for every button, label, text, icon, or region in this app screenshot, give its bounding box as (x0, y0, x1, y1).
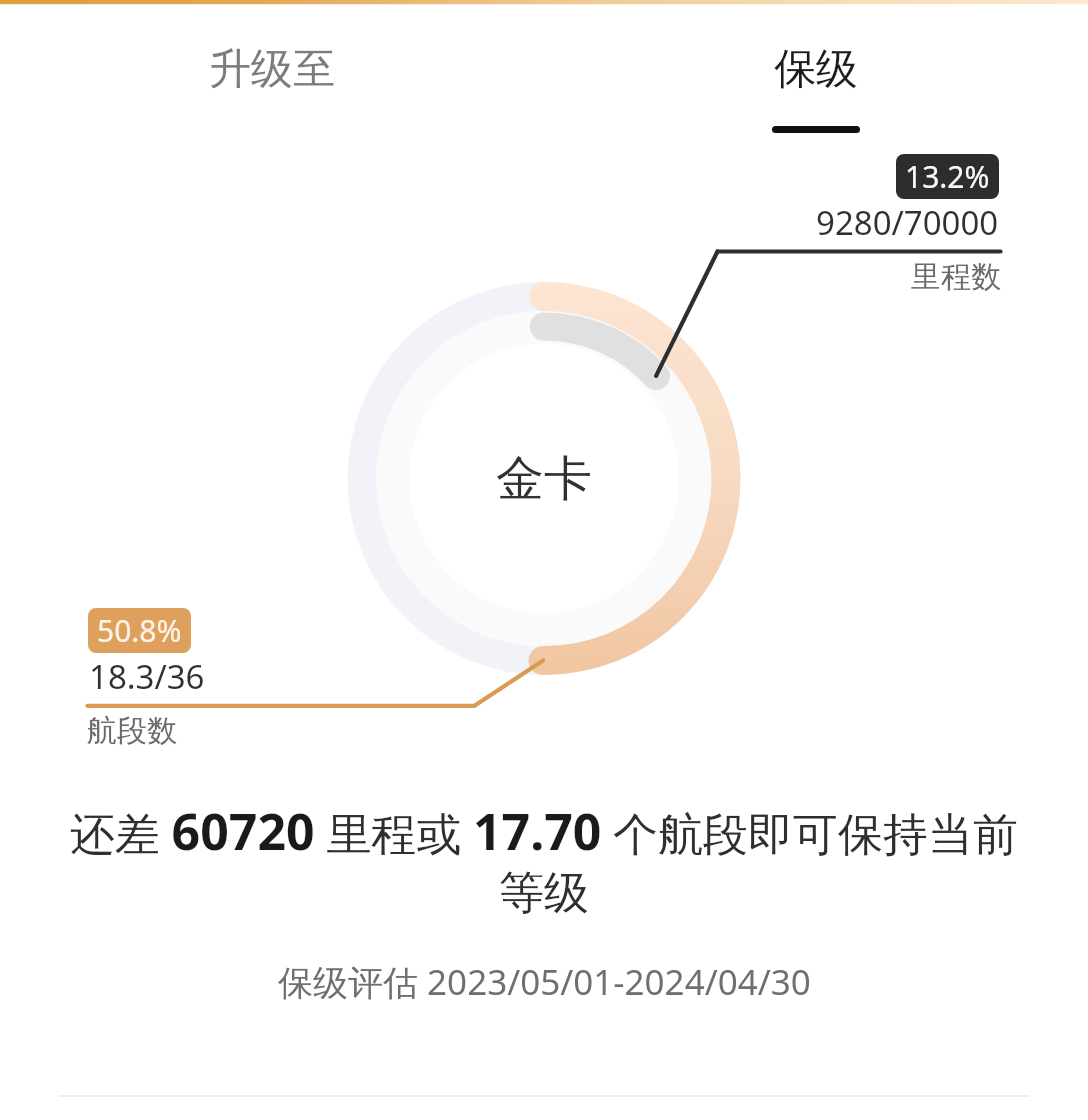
staticText: 13.2% (905, 156, 990, 197)
staticText: 18.3/36 (89, 654, 205, 699)
button[interactable]: 50.8% (88, 608, 191, 653)
button[interactable]: Gold card tier gauge (444, 446, 644, 512)
staticText: 升级至 (209, 43, 335, 96)
staticText: 50.8% (97, 610, 182, 651)
staticText: 航段数 (87, 712, 177, 750)
staticText: 金卡 (496, 449, 592, 509)
button[interactable]: 升级至 (0, 6, 544, 142)
staticText: 保级 (774, 43, 858, 96)
button[interactable]: 保级 (544, 6, 1088, 142)
staticText: 里程数 (911, 258, 1001, 296)
button[interactable]: 13.2% (896, 154, 999, 199)
staticText: 9280/70000 (816, 200, 999, 245)
staticText: 保级评估 2023/05/01-2024/04/30 (278, 958, 811, 1006)
staticText: 还差 60720 里程或 17.70 个航段即可保持当前等级 (64, 797, 1024, 922)
